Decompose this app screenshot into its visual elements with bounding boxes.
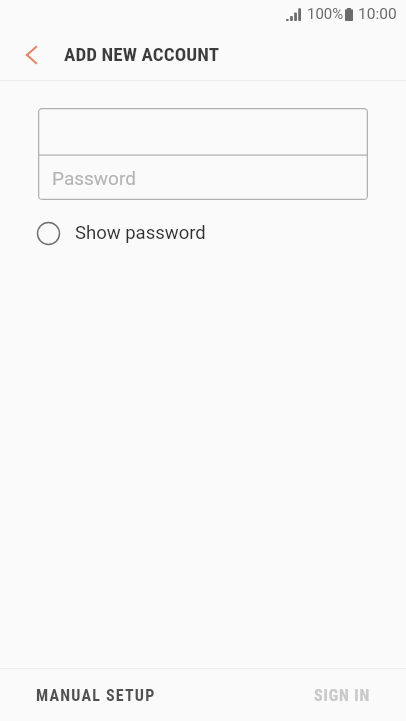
staticText: 10:00 <box>358 5 397 23</box>
button[interactable]: Password <box>38 155 368 200</box>
staticText: 100% <box>307 5 344 23</box>
button[interactable]: Show password <box>37 212 206 254</box>
button[interactable]: SIGN IN <box>203 669 406 721</box>
button[interactable] <box>38 108 368 155</box>
staticText: SIGN IN <box>314 686 371 705</box>
staticText: Password <box>52 167 136 189</box>
staticText: ADD NEW ACCOUNT <box>64 43 220 65</box>
button[interactable]: MANUAL SETUP <box>0 669 203 721</box>
staticText: MANUAL SETUP <box>36 686 156 705</box>
button[interactable]: Back <box>0 26 62 80</box>
staticText: Show password <box>75 222 206 244</box>
